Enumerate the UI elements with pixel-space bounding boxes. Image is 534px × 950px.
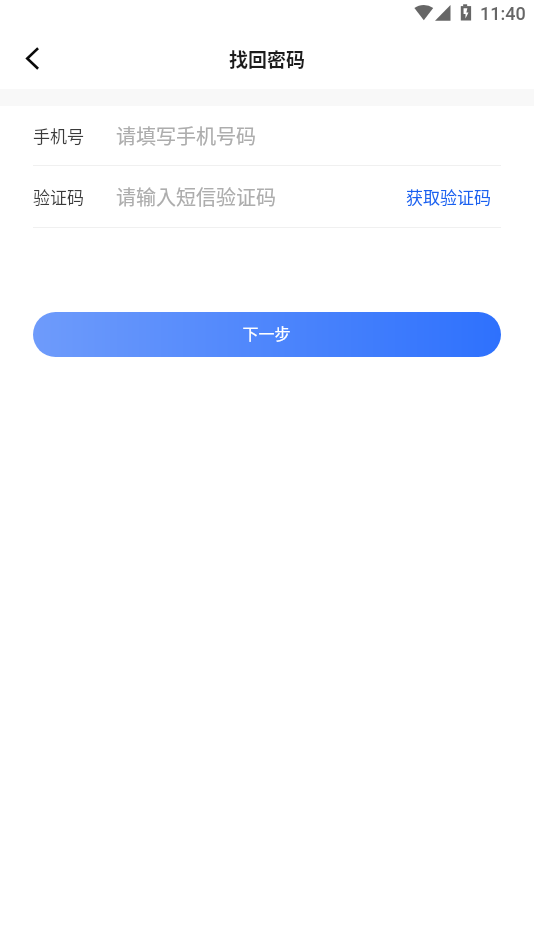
staticText: 11:40 [480,3,526,24]
staticText: 手机号 [33,123,84,148]
staticText: 请输入短信验证码 [116,182,276,211]
staticText: 下一步 [242,321,291,344]
button[interactable]: 获取验证码 [394,174,501,219]
button[interactable]: Back [0,30,58,88]
staticText: 请填写手机号码 [116,121,256,150]
staticText: 找回密码 [229,45,306,73]
staticText: 获取验证码 [406,184,491,209]
button[interactable]: 下一步 [33,312,501,357]
staticText: 验证码 [33,184,84,209]
